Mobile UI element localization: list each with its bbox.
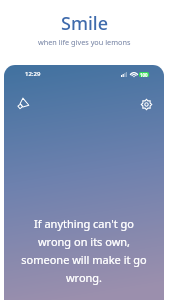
staticText: 100 — [140, 72, 148, 77]
staticText: Smile — [61, 11, 108, 36]
button[interactable]: Announcements — [11, 93, 33, 115]
staticText: If anything can't go wrong on its own, s… — [12, 216, 156, 285]
staticText: when life gives you lemons — [38, 37, 131, 47]
button[interactable]: Settings — [135, 93, 157, 115]
staticText: 12:29 — [25, 70, 41, 78]
